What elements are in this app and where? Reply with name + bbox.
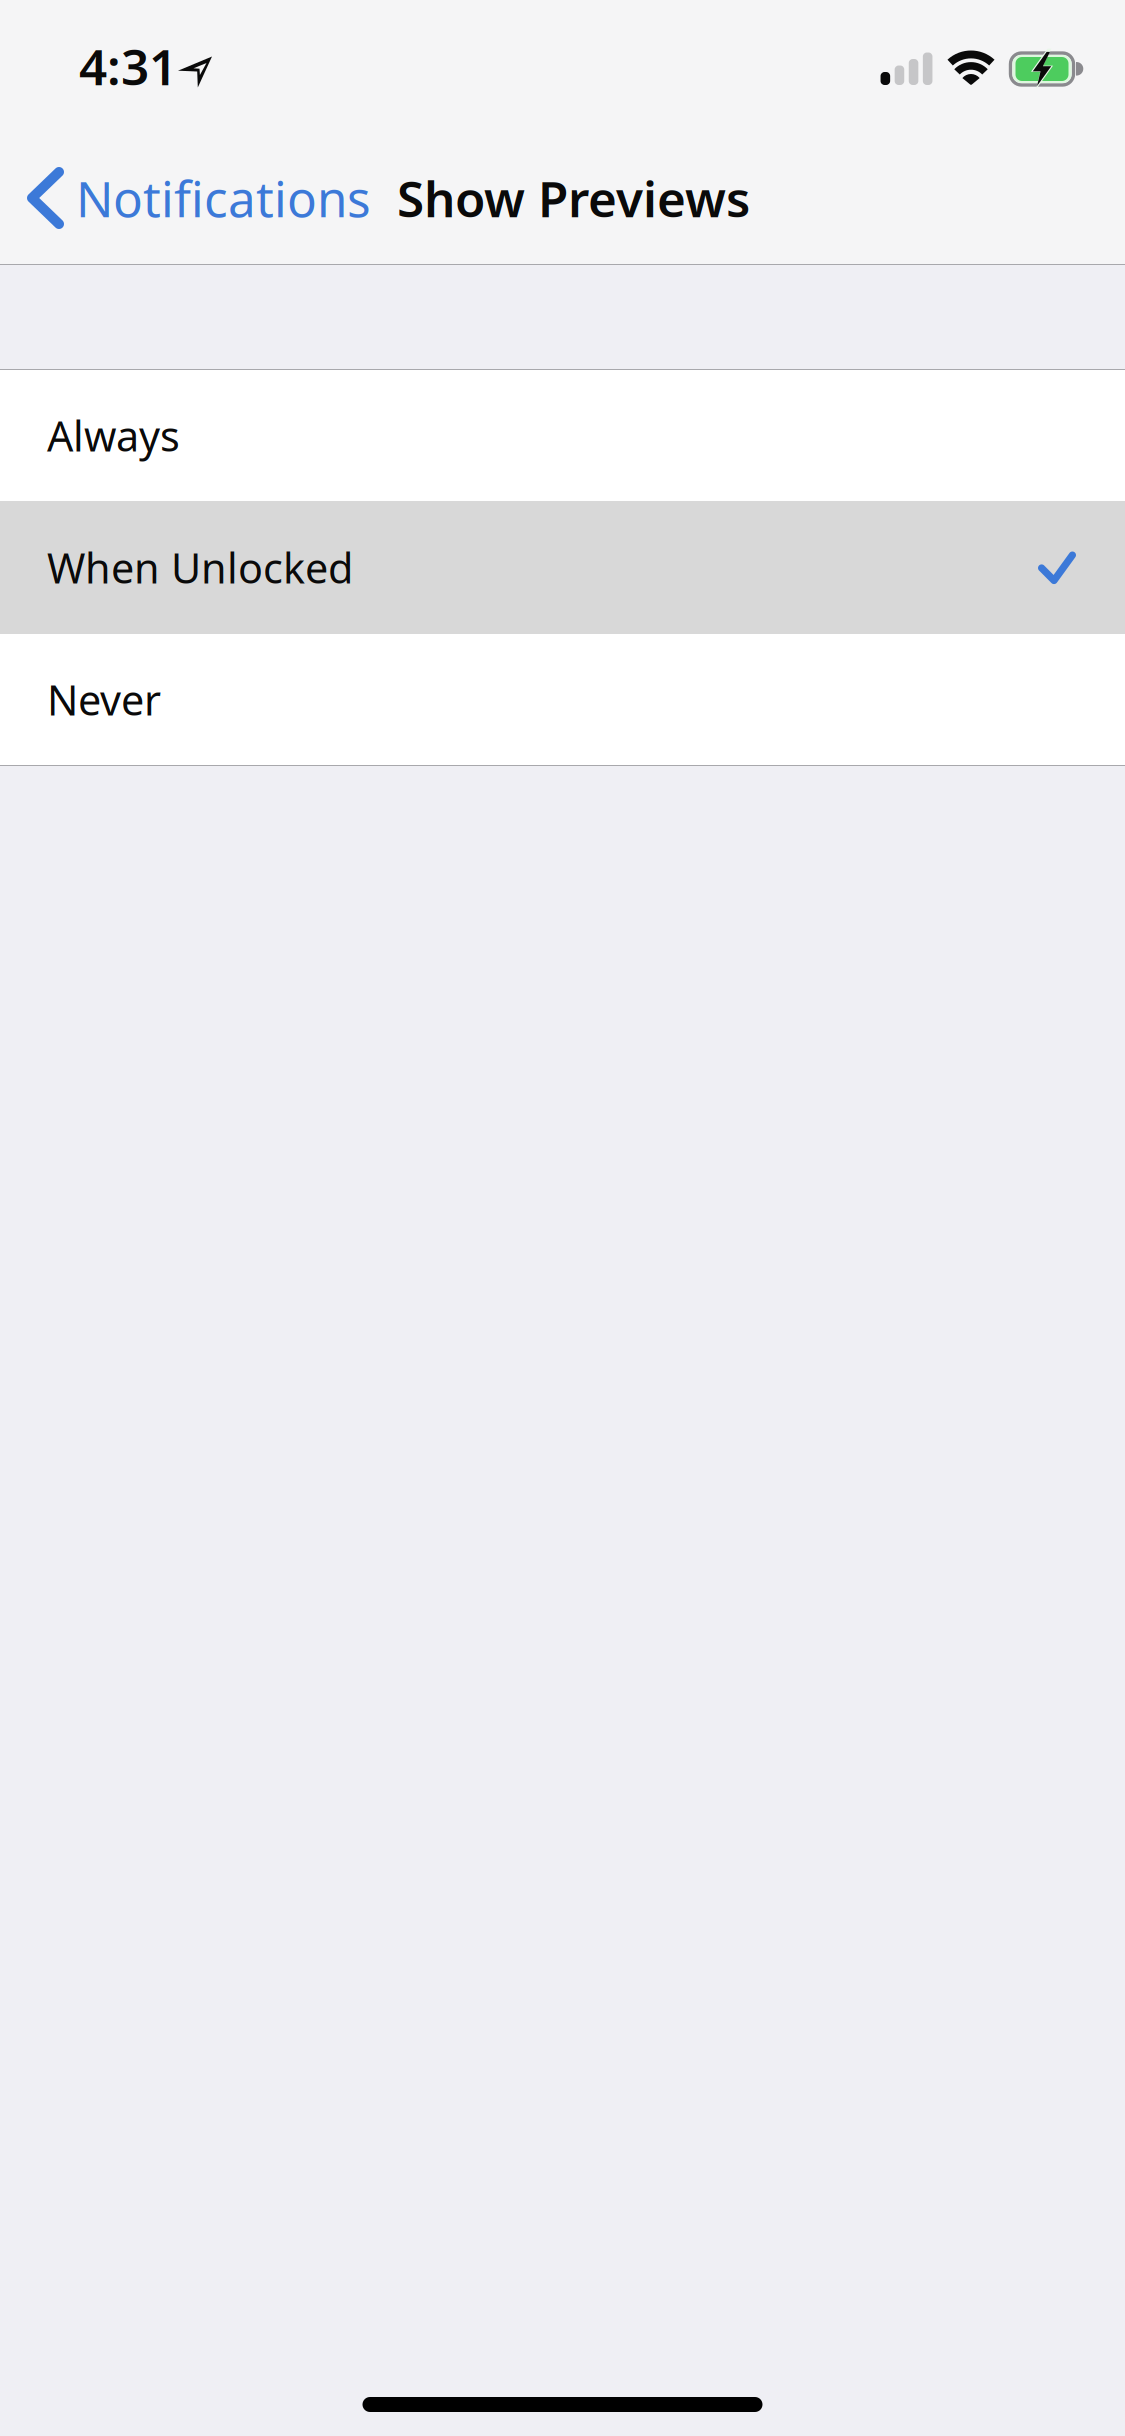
staticText: Show Previews (397, 165, 750, 231)
button[interactable]: When Unlocked (0, 501, 1125, 634)
staticText: When Unlocked (47, 540, 353, 595)
staticText: Always (47, 408, 180, 463)
staticText: 4:31 (79, 33, 177, 99)
button[interactable]: Notifications (0, 132, 397, 264)
staticText: Never (47, 672, 161, 727)
staticText: Notifications (76, 165, 371, 231)
button[interactable]: Never (0, 634, 1125, 765)
button[interactable]: Always (0, 370, 1125, 501)
